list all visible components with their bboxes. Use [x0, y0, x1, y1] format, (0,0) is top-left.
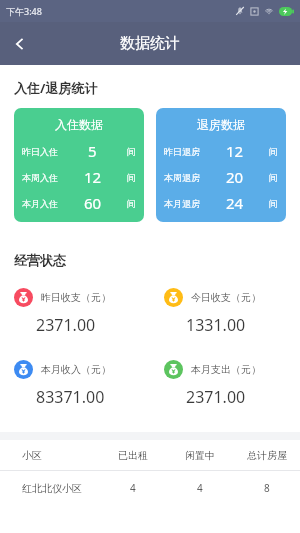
staticText: 2371.00	[186, 386, 246, 408]
button[interactable]: 入住数据	[14, 108, 144, 222]
staticText: 本月收入（元）	[41, 363, 111, 376]
staticText: 1331.00	[186, 314, 246, 336]
staticText: 4	[130, 481, 136, 495]
staticText: 入住数据	[55, 117, 103, 132]
staticText: 12	[226, 141, 244, 161]
staticText: 4	[197, 481, 203, 495]
staticText: 今日收支（元）	[191, 291, 261, 304]
staticText: 昨日入住	[22, 146, 58, 157]
staticText: 下午3:48	[6, 5, 42, 17]
staticText: 经营状态	[14, 252, 66, 268]
staticText: 昨日收支（元）	[41, 291, 111, 304]
staticText: 已出租	[118, 449, 148, 462]
staticText: 本月退房	[164, 198, 200, 209]
staticText: 间	[269, 172, 278, 183]
staticText: 闲置中	[185, 449, 215, 462]
staticText: 间	[269, 198, 278, 209]
staticText: 总计房屋	[247, 449, 287, 462]
staticText: 间	[127, 198, 136, 209]
staticText: 间	[127, 172, 136, 183]
staticText: 间	[269, 146, 278, 157]
button[interactable]: 本月收入（元）	[0, 360, 150, 408]
staticText: 小区	[22, 449, 42, 462]
staticText: 20	[226, 167, 244, 187]
staticText: 2371.00	[36, 314, 96, 336]
button[interactable]: 红北北仪小区	[0, 471, 300, 505]
button[interactable]: 本月支出（元）	[150, 360, 300, 408]
button[interactable]: 退房数据	[156, 108, 286, 222]
staticText: 红北北仪小区	[22, 482, 82, 495]
staticText: 昨日退房	[164, 146, 200, 157]
staticText: 本月入住	[22, 198, 58, 209]
button[interactable]: 昨日收支（元）	[0, 288, 150, 336]
staticText: 8	[264, 481, 270, 495]
staticText: 本周入住	[22, 172, 58, 183]
staticText: 5	[88, 141, 97, 161]
staticText: 本周退房	[164, 172, 200, 183]
staticText: 24	[226, 193, 244, 213]
staticText: 数据统计	[120, 34, 180, 53]
staticText: 本月支出（元）	[191, 363, 261, 376]
staticText: 入住/退房统计	[14, 79, 98, 97]
staticText: 间	[127, 146, 136, 157]
button[interactable]: 今日收支（元）	[150, 288, 300, 336]
button[interactable]: Back	[0, 24, 40, 64]
staticText: 83371.00	[36, 386, 105, 408]
staticText: 退房数据	[197, 117, 245, 132]
staticText: 60	[84, 193, 102, 213]
staticText: 12	[84, 167, 102, 187]
